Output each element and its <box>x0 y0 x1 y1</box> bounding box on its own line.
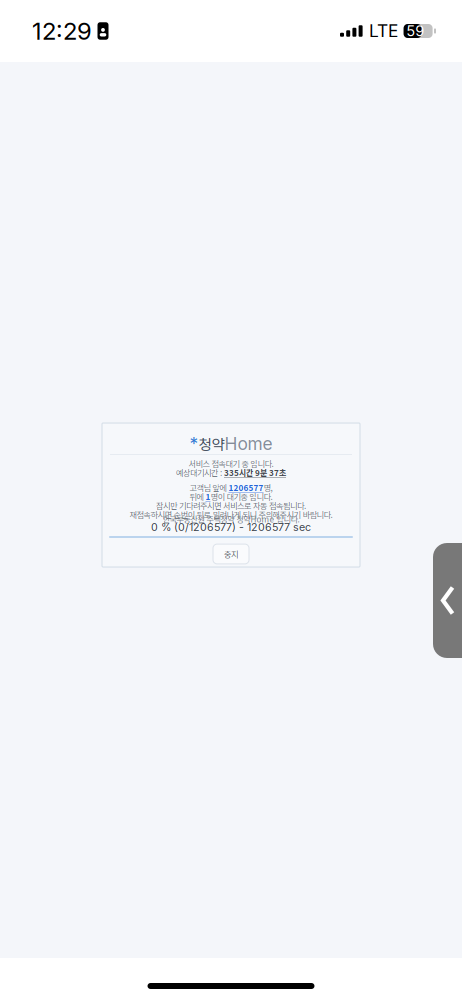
staticText: 고객님 앞에 <box>189 482 228 493</box>
staticText: 잠시만 기다려주시면 서비스로 자동 접속됩니다. <box>156 500 306 511</box>
staticText: 59 <box>406 22 424 40</box>
button[interactable]: Open side panel <box>433 543 462 658</box>
staticText: 중지 <box>224 548 238 560</box>
staticText: * <box>189 433 198 454</box>
staticText: 0 % (0/1206577) - 1206577 sec <box>151 520 311 533</box>
staticText: 서비스 접속대기 중 입니다. <box>188 458 273 469</box>
staticText: 1206577 <box>228 482 263 493</box>
button[interactable]: 중지 <box>213 544 249 564</box>
staticText: 명이 대기중 입니다. <box>210 491 272 502</box>
staticText: 1 <box>205 491 210 502</box>
staticText: 예상대기시간 : <box>176 467 224 478</box>
staticText: 청약 <box>198 433 224 454</box>
staticText: 재접속하시면 순번이 뒤로 밀려나게 되니 주의해주시기 바랍니다. <box>129 509 332 520</box>
staticText: 한국부동산원 주택청약 청약Home 입니다. <box>162 513 299 525</box>
staticText: 335시간 9분 37초 <box>224 467 286 478</box>
staticText: LTE <box>369 20 398 41</box>
staticText: Home <box>224 433 272 454</box>
staticText: 명, <box>263 482 272 493</box>
staticText: 뒤에 <box>189 491 205 502</box>
staticText: 12:29 <box>32 16 92 45</box>
